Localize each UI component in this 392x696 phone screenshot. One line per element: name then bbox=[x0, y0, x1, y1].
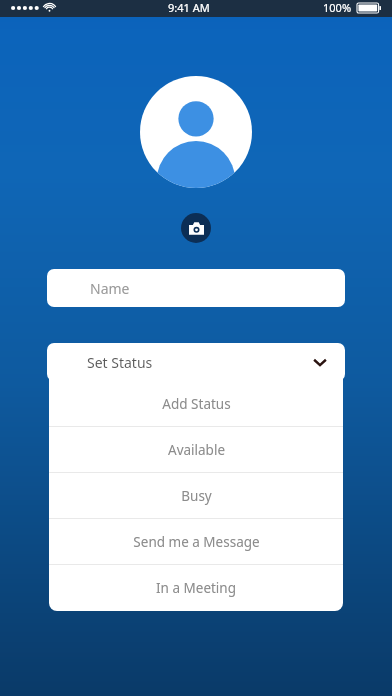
staticText: 9:41 AM bbox=[168, 0, 210, 15]
button[interactable]: Busy bbox=[49, 473, 343, 518]
staticText: Available bbox=[168, 441, 225, 459]
staticText: In a Meeting bbox=[156, 579, 236, 597]
button[interactable]: Change photo bbox=[181, 213, 211, 243]
staticText: Set Status bbox=[87, 353, 313, 372]
button[interactable]: Add Status bbox=[49, 381, 343, 426]
button[interactable]: In a Meeting bbox=[49, 565, 343, 610]
staticText: Add Status bbox=[162, 395, 231, 413]
staticText: Busy bbox=[181, 487, 212, 505]
button[interactable]: Available bbox=[49, 427, 343, 472]
button[interactable]: Name bbox=[47, 269, 345, 307]
staticText: Name bbox=[90, 279, 130, 298]
button[interactable]: Set Status bbox=[47, 343, 345, 381]
button[interactable]: Profile photo bbox=[140, 76, 252, 188]
staticText: Send me a Message bbox=[133, 533, 260, 551]
button[interactable]: Send me a Message bbox=[49, 519, 343, 564]
staticText: 100% bbox=[323, 0, 352, 15]
